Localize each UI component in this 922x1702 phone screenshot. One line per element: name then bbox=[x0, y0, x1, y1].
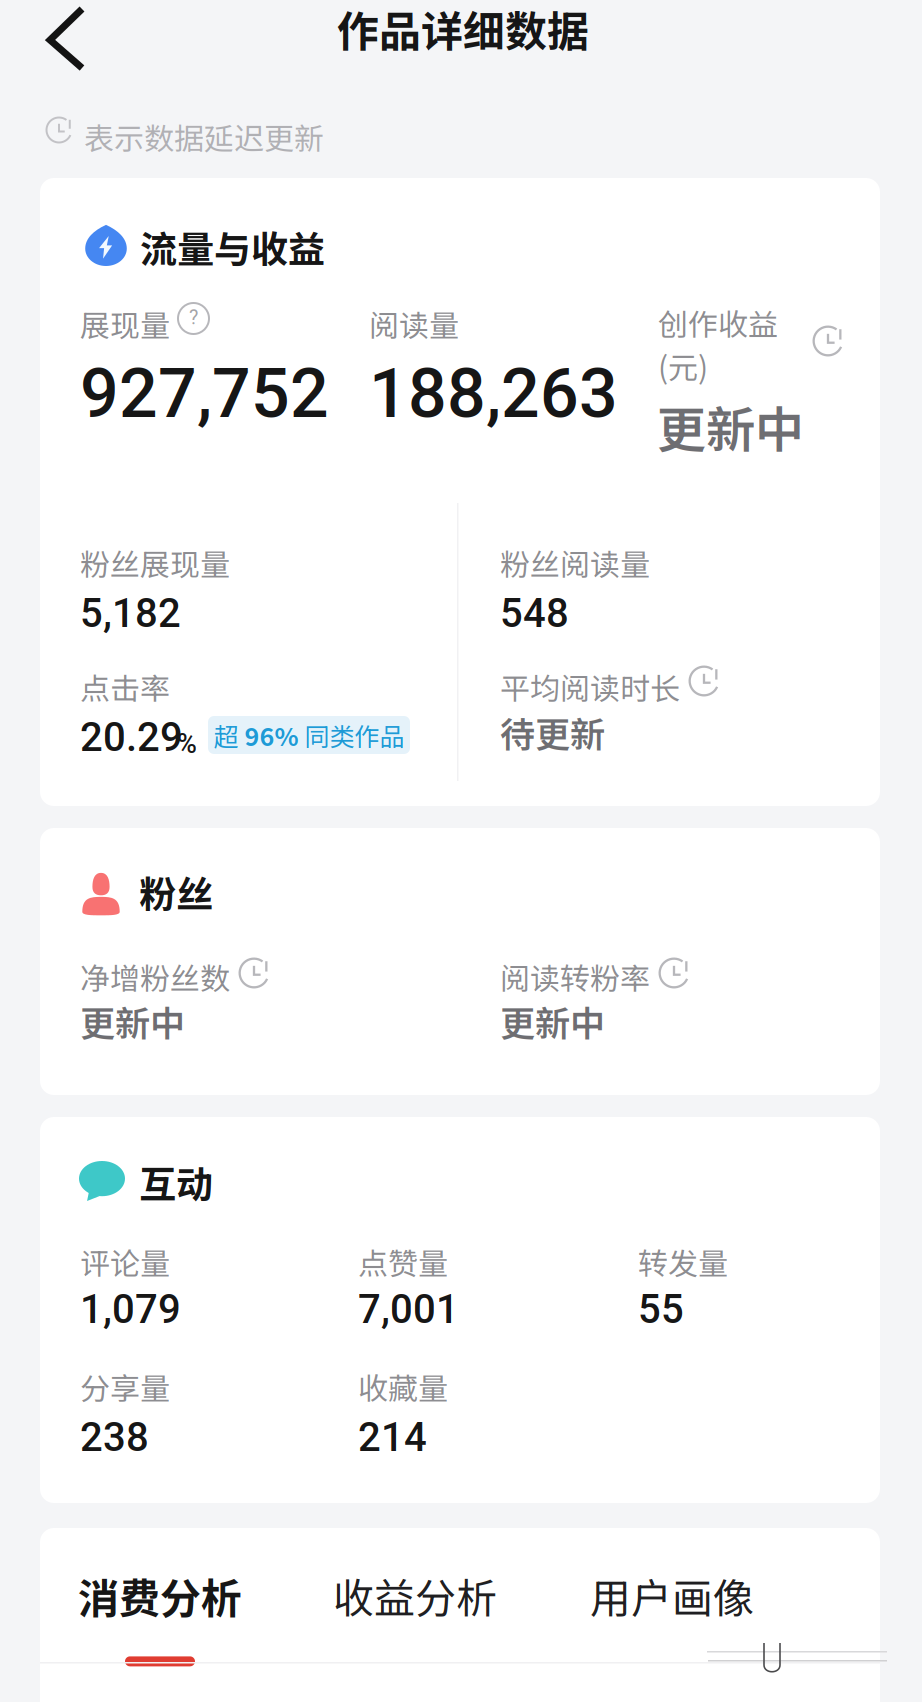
staticText: 表示数据延迟更新 bbox=[84, 115, 324, 158]
staticText: 更新中 bbox=[657, 391, 804, 462]
staticText: 粉丝 bbox=[139, 865, 213, 919]
staticText: 阅读量 bbox=[369, 302, 459, 345]
staticText: 收益分析 bbox=[333, 1566, 497, 1625]
staticText: 更新中 bbox=[80, 996, 185, 1047]
staticText: 粉丝阅读量 bbox=[500, 541, 650, 584]
staticText: (元) bbox=[658, 344, 708, 387]
staticText: 238 bbox=[80, 1414, 149, 1461]
staticText: 5,182 bbox=[80, 590, 181, 637]
staticText: 点击率 bbox=[80, 665, 170, 708]
staticText: 粉丝展现量 bbox=[80, 541, 230, 584]
button[interactable]: 收益分析 bbox=[333, 1566, 497, 1625]
staticText: 548 bbox=[500, 590, 569, 637]
staticText: 流量与收益 bbox=[140, 220, 325, 274]
staticText: 平均阅读时长 bbox=[500, 665, 680, 708]
staticText: 转发量 bbox=[638, 1240, 728, 1283]
staticText: 同类作品 bbox=[298, 717, 404, 753]
staticText: 互动 bbox=[139, 1155, 213, 1209]
staticText: 待更新 bbox=[500, 707, 605, 758]
staticText: 点赞量 bbox=[358, 1240, 448, 1283]
staticText: 评论量 bbox=[80, 1240, 170, 1283]
staticText: 1,079 bbox=[80, 1286, 181, 1333]
staticText: 消费分析 bbox=[78, 1566, 242, 1625]
staticText: 7,001 bbox=[358, 1286, 459, 1333]
staticText: 超 bbox=[213, 717, 244, 753]
button[interactable]: 消费分析 bbox=[78, 1566, 242, 1666]
staticText: 作品详细数据 bbox=[337, 0, 589, 59]
staticText: ? bbox=[189, 306, 198, 329]
staticText: % bbox=[177, 728, 197, 760]
button[interactable]: 用户画像 bbox=[590, 1566, 754, 1625]
staticText: 更新中 bbox=[500, 996, 605, 1047]
staticText: 927,752 bbox=[80, 354, 329, 434]
staticText: 净增粉丝数 bbox=[80, 955, 230, 998]
staticText: 用户画像 bbox=[590, 1566, 754, 1625]
staticText: 214 bbox=[358, 1414, 427, 1461]
staticText: 96% bbox=[244, 717, 298, 753]
staticText: 188,263 bbox=[369, 354, 618, 434]
staticText: 阅读转粉率 bbox=[500, 955, 650, 998]
staticText: 55 bbox=[638, 1286, 684, 1333]
staticText: 创作收益 bbox=[658, 301, 778, 344]
staticText: 20.29 bbox=[80, 714, 183, 761]
staticText: 收藏量 bbox=[358, 1365, 448, 1408]
button[interactable]: Back bbox=[46, 5, 88, 73]
staticText: 分享量 bbox=[80, 1365, 170, 1408]
staticText: 展现量 bbox=[80, 302, 170, 345]
